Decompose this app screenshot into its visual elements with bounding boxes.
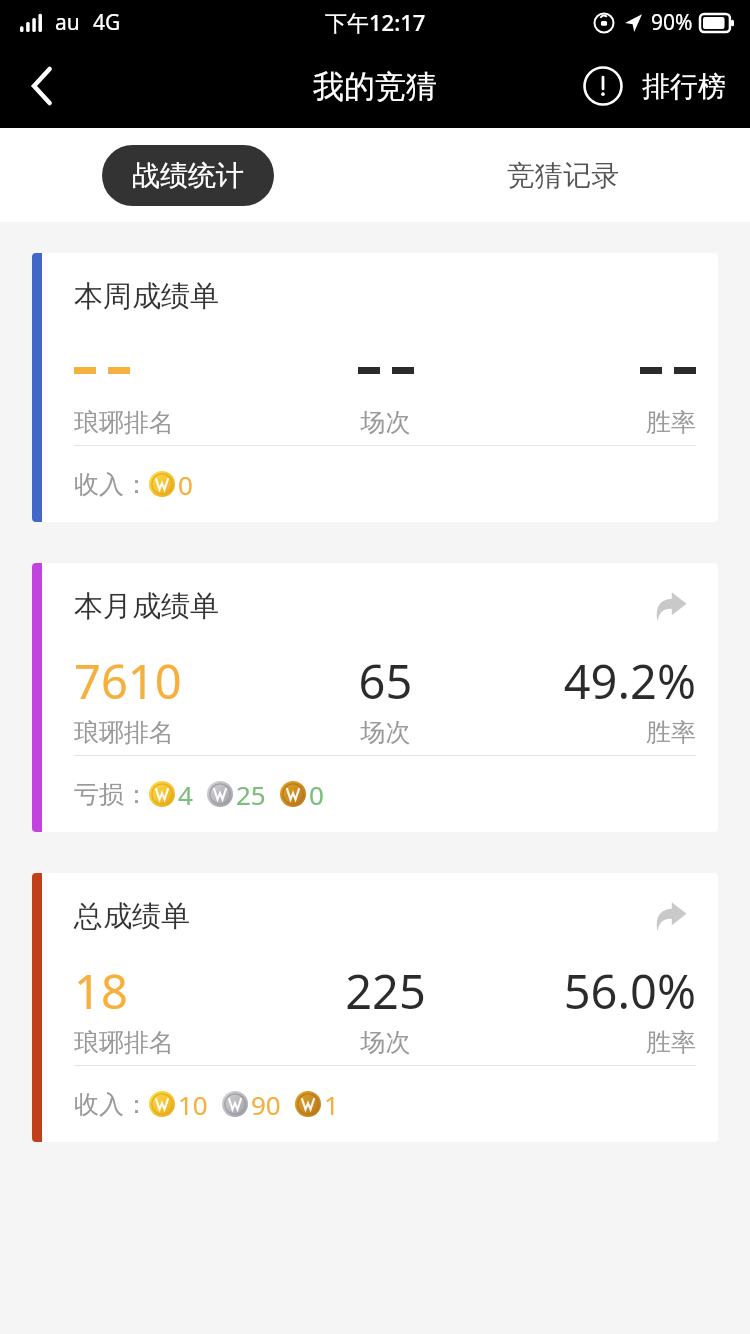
staticText: 4G: [93, 8, 121, 37]
staticText: 场次: [282, 717, 489, 748]
button[interactable]: 竞猜记录: [477, 145, 649, 206]
staticText: 竞猜记录: [507, 158, 619, 193]
button[interactable]: 本月成绩单: [32, 563, 718, 832]
staticText: 本周成绩单: [74, 278, 219, 315]
staticText: 战绩统计: [132, 158, 244, 193]
staticText: 胜率: [489, 1027, 696, 1058]
button[interactable]: 本周成绩单: [32, 253, 718, 522]
staticText: 收入：: [74, 1089, 149, 1120]
staticText: 本月成绩单: [74, 588, 219, 625]
staticText: 收入：: [74, 469, 149, 500]
staticText: 90: [251, 1087, 281, 1122]
button[interactable]: 排行榜: [638, 61, 730, 112]
staticText: 56.0%: [489, 959, 696, 1021]
staticText: 亏损：: [74, 779, 149, 810]
staticText: 7610: [74, 649, 282, 711]
staticText: 10: [178, 1087, 208, 1122]
button[interactable]: Share: [644, 580, 696, 632]
button[interactable]: 战绩统计: [102, 145, 274, 206]
staticText: 琅琊排名: [74, 717, 282, 748]
staticText: 下午12:17: [325, 7, 426, 37]
staticText: 排行榜: [642, 69, 726, 104]
staticText: 1: [324, 1087, 339, 1122]
staticText: 胜率: [489, 717, 696, 748]
staticText: 0: [178, 467, 193, 502]
staticText: 4: [178, 777, 193, 812]
staticText: 49.2%: [489, 649, 696, 711]
staticText: 90%: [651, 8, 693, 37]
staticText: au: [55, 8, 80, 37]
staticText: 胜率: [489, 407, 696, 438]
staticText: 65: [282, 649, 489, 711]
staticText: 225: [282, 959, 489, 1021]
button[interactable]: Back: [10, 54, 74, 118]
staticText: 琅琊排名: [74, 407, 282, 438]
staticText: 场次: [282, 407, 489, 438]
button[interactable]: 总成绩单: [32, 873, 718, 1142]
button[interactable]: Share: [644, 890, 696, 942]
staticText: 0: [309, 777, 324, 812]
staticText: 25: [236, 777, 266, 812]
staticText: 18: [74, 959, 282, 1021]
staticText: 总成绩单: [74, 898, 190, 935]
staticText: 琅琊排名: [74, 1027, 282, 1058]
staticText: 场次: [282, 1027, 489, 1058]
button[interactable]: Info: [572, 55, 634, 117]
staticText: 我的竞猜: [313, 67, 437, 106]
